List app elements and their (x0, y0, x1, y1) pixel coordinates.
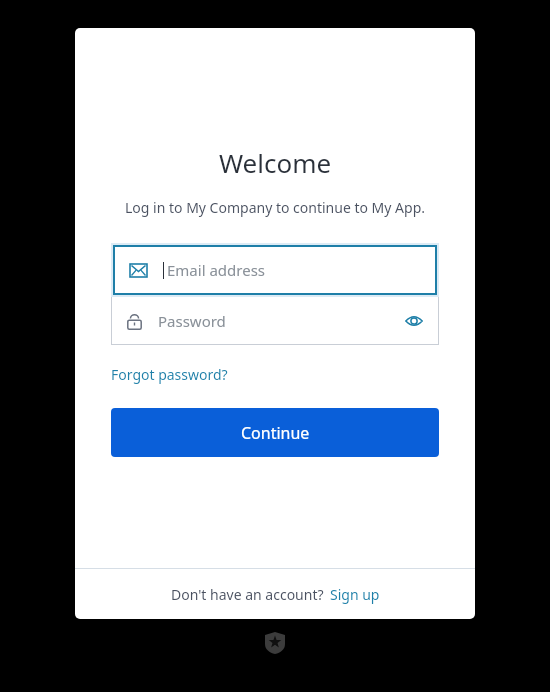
button[interactable]: Forgot password? (111, 363, 228, 386)
button[interactable]: Continue (111, 408, 439, 457)
staticText: Log in to My Company to continue to My A… (75, 198, 475, 217)
button[interactable]: Email address (114, 246, 436, 294)
button[interactable]: Password (111, 297, 439, 345)
button[interactable]: Show password (395, 302, 433, 340)
staticText: Email address (167, 260, 266, 280)
staticText: Don't have an account? (171, 585, 324, 604)
staticText: Password (158, 311, 226, 331)
button[interactable]: Sign up (330, 583, 380, 606)
staticText: Forgot password? (111, 365, 228, 384)
staticText: Sign up (330, 585, 380, 604)
other: Auth0 (264, 632, 286, 654)
staticText: Continue (241, 422, 310, 444)
staticText: Welcome (75, 145, 475, 180)
